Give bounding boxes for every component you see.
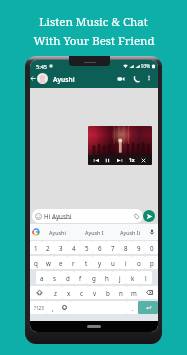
staticText: 93% [141, 63, 151, 69]
button[interactable]: Emoji [58, 301, 70, 314]
button[interactable]: d [61, 271, 74, 284]
staticText: Ayush I [85, 229, 104, 236]
staticText: w [46, 259, 51, 267]
button[interactable]: 4 [67, 241, 80, 254]
button[interactable]: y [93, 256, 106, 269]
button[interactable]: Playback speed [128, 157, 136, 164]
button[interactable]: ?123 [30, 301, 47, 314]
staticText: m [131, 289, 137, 297]
staticText: 1 [34, 244, 38, 252]
button[interactable]: w [42, 256, 54, 269]
button[interactable]: 5 [80, 241, 93, 254]
button[interactable]: Enter [138, 301, 158, 314]
staticText: q [34, 259, 38, 267]
button[interactable]: x [62, 286, 75, 299]
button[interactable]: Ayushi [39, 224, 76, 240]
staticText: s [53, 274, 56, 282]
staticText: d [66, 274, 70, 282]
button[interactable]: Video call [117, 75, 125, 83]
button[interactable]: Back [30, 74, 36, 83]
button[interactable]: 7 [106, 241, 119, 254]
button[interactable]: r [67, 256, 80, 269]
button[interactable]: . [127, 301, 138, 314]
staticText: 6 [98, 244, 102, 252]
button[interactable]: m [127, 286, 140, 299]
button[interactable]: q [30, 256, 42, 269]
button[interactable]: More options [146, 75, 152, 81]
staticText: 2 [46, 244, 50, 252]
button[interactable]: Next [116, 157, 123, 164]
button[interactable]: c [75, 286, 88, 299]
button[interactable]: , [47, 301, 58, 314]
button[interactable]: p [145, 256, 158, 269]
button[interactable]: Close [140, 157, 147, 164]
button[interactable]: Ayush Ii [112, 224, 148, 240]
staticText: o [137, 259, 141, 267]
staticText: 4 [72, 244, 76, 252]
staticText: ?123 [34, 305, 44, 311]
button[interactable]: Send [143, 210, 155, 222]
button[interactable]: 9 [132, 241, 145, 254]
button[interactable]: f [74, 271, 87, 284]
staticText: z [54, 289, 57, 297]
button[interactable]: e [54, 256, 67, 269]
staticText: x [67, 289, 71, 297]
button[interactable]: Ayush I [76, 224, 112, 240]
button[interactable]: j [113, 271, 126, 284]
button[interactable]: Shift [30, 286, 48, 299]
staticText: Ayushi [52, 212, 72, 220]
button[interactable]: z [48, 286, 62, 299]
button[interactable]: 8 [119, 241, 132, 254]
staticText: 5:45 [36, 63, 47, 70]
staticText: 5 [85, 244, 89, 252]
button[interactable]: b [101, 286, 114, 299]
staticText: l [145, 274, 147, 282]
button[interactable]: 2 [42, 241, 54, 254]
staticText: p [150, 259, 154, 267]
button[interactable]: t [80, 256, 93, 269]
button[interactable]: Previous [93, 157, 100, 164]
staticText: y [98, 259, 102, 267]
staticText: 9 [137, 244, 141, 252]
button[interactable]: g [87, 271, 100, 284]
staticText: 1x [129, 157, 135, 164]
staticText: i [125, 259, 127, 267]
staticText: a [40, 274, 44, 282]
button[interactable]: 6 [93, 241, 106, 254]
button[interactable]: o [132, 256, 145, 269]
button[interactable]: Hi [32, 209, 143, 223]
button[interactable]: l [139, 271, 152, 284]
staticText: k [131, 274, 135, 282]
staticText: 0 [150, 244, 154, 252]
button[interactable]: v [88, 286, 101, 299]
staticText: Ayush Ii [120, 229, 141, 236]
staticText: 7 [111, 244, 115, 252]
staticText: 3 [59, 244, 63, 252]
staticText: Ayushi [49, 229, 66, 236]
staticText: c [80, 289, 83, 297]
staticText: Listen Music & Chat [39, 14, 148, 30]
button[interactable]: Voice input [148, 228, 156, 236]
button[interactable]: s [48, 271, 61, 284]
button[interactable]: a [36, 271, 48, 284]
staticText: , [52, 304, 54, 312]
staticText: j [119, 274, 121, 282]
staticText: f [79, 274, 82, 282]
button[interactable]: Call [133, 75, 141, 83]
staticText: r [72, 259, 75, 267]
button[interactable]: u [106, 256, 119, 269]
button[interactable]: k [126, 271, 139, 284]
staticText: h [105, 274, 109, 282]
button[interactable]: h [100, 271, 113, 284]
button[interactable]: Backspace [140, 286, 158, 299]
staticText: With Your Best Friend [33, 33, 155, 49]
button[interactable]: Pause [104, 157, 111, 164]
button[interactable]: 3 [54, 241, 67, 254]
button[interactable]: i [119, 256, 132, 269]
staticText: Hi [44, 212, 52, 220]
button[interactable]: 1 [30, 241, 42, 254]
button[interactable]: n [114, 286, 127, 299]
staticText: t [85, 259, 88, 267]
button[interactable]: 0 [145, 241, 158, 254]
